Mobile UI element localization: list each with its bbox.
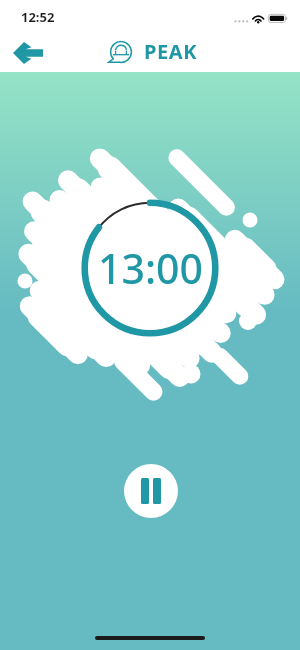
staticText: PEAK <box>144 38 198 65</box>
staticText: 12:52 <box>21 8 55 26</box>
button[interactable]: Back <box>6 36 50 70</box>
button[interactable]: Pause <box>124 464 178 518</box>
staticText: 13:00 <box>98 240 203 296</box>
